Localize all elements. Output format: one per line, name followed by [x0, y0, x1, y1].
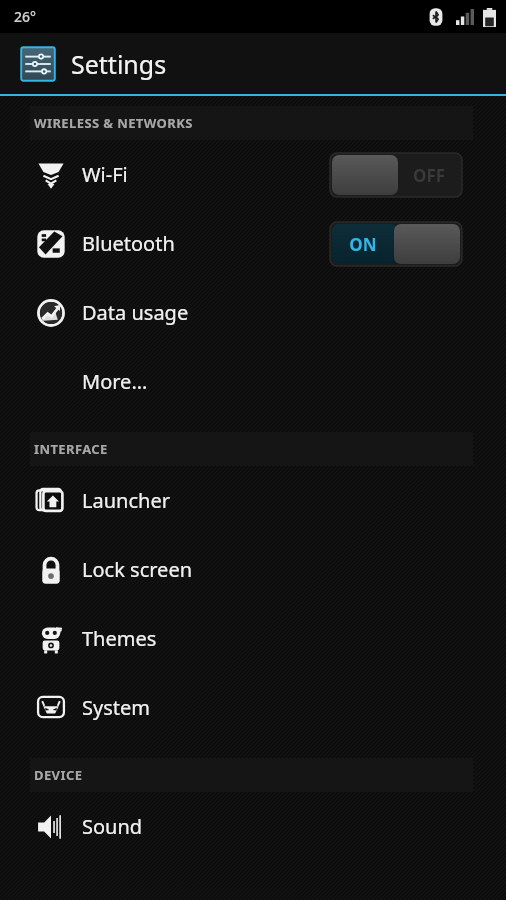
- button[interactable]: Bluetooth: [0, 209, 506, 278]
- staticText: Data usage: [82, 299, 189, 326]
- button[interactable]: Lock screen: [0, 535, 506, 604]
- staticText: DEVICE: [34, 766, 83, 784]
- staticText: OFF: [396, 164, 462, 187]
- staticText: Themes: [82, 625, 157, 652]
- staticText: INTERFACE: [34, 440, 108, 458]
- staticText: Bluetooth: [82, 230, 175, 257]
- staticText: Wi-Fi: [82, 161, 128, 188]
- staticText: WIRELESS & NETWORKS: [34, 114, 193, 132]
- button[interactable]: System: [0, 673, 506, 742]
- staticText: ON: [330, 233, 396, 256]
- button[interactable]: Toggle on: [330, 222, 462, 266]
- staticText: Settings: [71, 47, 167, 81]
- button[interactable]: More…: [0, 347, 506, 416]
- button[interactable]: Wi-Fi: [0, 140, 506, 209]
- staticText: Lock screen: [82, 556, 193, 583]
- staticText: 26°: [14, 7, 36, 26]
- button[interactable]: Settings: [0, 33, 506, 94]
- staticText: More…: [82, 368, 148, 395]
- button[interactable]: Data usage: [0, 278, 506, 347]
- button[interactable]: Themes: [0, 604, 506, 673]
- button[interactable]: Launcher: [0, 466, 506, 535]
- staticText: System: [82, 694, 150, 721]
- staticText: Launcher: [82, 487, 170, 514]
- staticText: Sound: [82, 813, 143, 840]
- button[interactable]: Toggle off: [330, 153, 462, 197]
- button[interactable]: Sound: [0, 792, 506, 861]
